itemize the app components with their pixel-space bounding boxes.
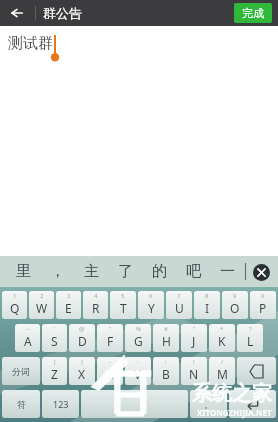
staticText: 2 bbox=[40, 292, 44, 300]
staticText: P bbox=[259, 300, 267, 316]
staticText: 7 bbox=[177, 292, 181, 300]
staticText: 测试群 bbox=[8, 34, 53, 53]
staticText: 吧 bbox=[186, 262, 201, 281]
staticText: 0 bbox=[261, 292, 265, 300]
button[interactable]: 6 bbox=[138, 291, 164, 319]
button[interactable]: ? bbox=[237, 324, 263, 352]
staticText: 的 bbox=[152, 262, 167, 281]
staticText: ~ bbox=[26, 325, 30, 333]
button[interactable]: 分词 bbox=[2, 357, 40, 385]
button[interactable]: * bbox=[209, 324, 235, 352]
button[interactable]: 完成 bbox=[234, 3, 272, 23]
staticText: 123 bbox=[53, 398, 69, 410]
button[interactable]: @ bbox=[69, 324, 95, 352]
button[interactable]: 2 bbox=[29, 291, 54, 319]
button[interactable]: # bbox=[153, 324, 179, 352]
staticText: 3 bbox=[67, 292, 71, 300]
button[interactable]: 1 bbox=[2, 291, 27, 319]
button[interactable]: / bbox=[209, 357, 235, 385]
button[interactable]: ; bbox=[153, 357, 179, 385]
button[interactable]: ~ bbox=[15, 324, 40, 352]
button[interactable]: ( bbox=[42, 357, 67, 385]
staticText: 1 bbox=[13, 292, 17, 300]
button[interactable]: Space bbox=[81, 390, 188, 418]
button[interactable]: 0 bbox=[250, 291, 276, 319]
button[interactable]: 4 bbox=[83, 291, 108, 319]
staticText: ' bbox=[54, 325, 56, 333]
button[interactable]: 符 bbox=[2, 390, 40, 418]
button[interactable]: ) bbox=[69, 357, 95, 385]
staticText: G bbox=[134, 333, 143, 349]
staticText: 符 bbox=[17, 399, 26, 410]
staticText: 群公告 bbox=[43, 5, 82, 21]
staticText: N bbox=[189, 366, 199, 382]
staticText: H bbox=[162, 333, 171, 349]
button[interactable]: ， bbox=[40, 256, 74, 287]
staticText: A bbox=[24, 333, 32, 349]
button[interactable]: " bbox=[97, 324, 123, 352]
staticText: / bbox=[221, 358, 224, 366]
staticText: 5 bbox=[121, 292, 125, 300]
staticText: @ bbox=[79, 325, 85, 333]
staticText: Q bbox=[10, 300, 20, 316]
button[interactable]: 3 bbox=[56, 291, 81, 319]
button[interactable]: 主 bbox=[74, 256, 108, 287]
button[interactable]: 的 bbox=[142, 256, 176, 287]
button[interactable]: % bbox=[125, 324, 151, 352]
staticText: 分词 bbox=[12, 366, 30, 377]
button[interactable]: Enter bbox=[229, 390, 276, 418]
button[interactable]: 123 bbox=[42, 390, 79, 418]
staticText: 。 bbox=[204, 399, 213, 410]
staticText: 完成 bbox=[242, 6, 264, 20]
button[interactable]: 了 bbox=[108, 256, 142, 287]
staticText: 一 bbox=[220, 262, 235, 281]
button[interactable]: 7 bbox=[166, 291, 192, 319]
staticText: X bbox=[78, 366, 86, 382]
button[interactable]: 9 bbox=[222, 291, 248, 319]
button[interactable]: ' bbox=[42, 324, 67, 352]
button[interactable]: 里 bbox=[6, 256, 40, 287]
staticText: ? bbox=[249, 325, 252, 333]
staticText: ) bbox=[81, 358, 83, 366]
staticText: 6 bbox=[149, 292, 153, 300]
staticText: 8 bbox=[205, 292, 209, 300]
button[interactable]: 一 bbox=[210, 256, 244, 287]
staticText: ! bbox=[193, 358, 195, 366]
button[interactable]: : bbox=[125, 357, 151, 385]
staticText: V bbox=[134, 366, 142, 382]
staticText: ; bbox=[165, 358, 167, 366]
button[interactable]: ! bbox=[181, 357, 207, 385]
staticText: R bbox=[92, 300, 100, 316]
staticText: ， bbox=[50, 262, 65, 281]
staticText: W bbox=[36, 300, 48, 316]
staticText: 里 bbox=[16, 262, 31, 281]
staticText: S bbox=[51, 333, 58, 349]
button[interactable]: Back bbox=[0, 0, 34, 26]
staticText: " bbox=[109, 325, 112, 333]
button[interactable]: Backspace bbox=[237, 357, 276, 385]
staticText: 主 bbox=[84, 262, 99, 281]
button[interactable]: 。 bbox=[190, 390, 227, 418]
button[interactable]: 吧 bbox=[176, 256, 210, 287]
staticText: U bbox=[175, 300, 184, 316]
staticText: C bbox=[106, 366, 114, 382]
staticText: % bbox=[136, 325, 141, 333]
staticText: 9 bbox=[233, 292, 237, 300]
button[interactable]: 5 bbox=[110, 291, 136, 319]
staticText: 系统之家 bbox=[192, 381, 272, 406]
staticText: # bbox=[164, 325, 168, 333]
staticText: K bbox=[218, 333, 226, 349]
staticText: I bbox=[205, 300, 210, 316]
button[interactable]: Close keyboard bbox=[251, 262, 271, 282]
button[interactable]: - bbox=[97, 357, 123, 385]
staticText: D bbox=[78, 333, 87, 349]
button[interactable]: 8 bbox=[194, 291, 220, 319]
staticText: ( bbox=[54, 358, 56, 366]
staticText: T bbox=[120, 300, 127, 316]
staticText: F bbox=[107, 333, 114, 349]
staticText: O bbox=[230, 300, 240, 316]
staticText: B bbox=[162, 366, 170, 382]
staticText: : bbox=[137, 358, 139, 366]
staticText: * bbox=[220, 325, 224, 333]
button[interactable]: " bbox=[181, 324, 207, 352]
